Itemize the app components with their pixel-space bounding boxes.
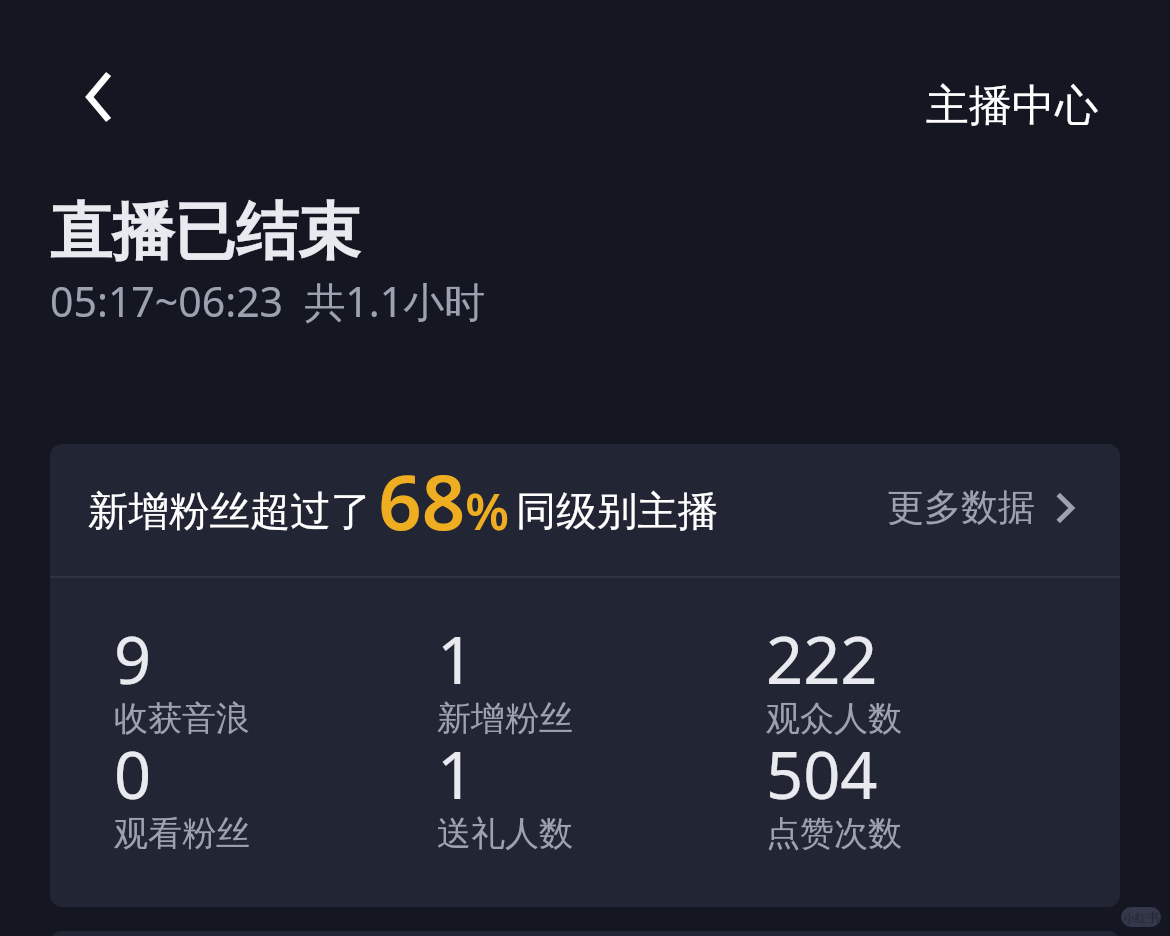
staticText: 小红书 xyxy=(1123,910,1159,925)
staticText: 222 xyxy=(766,615,878,704)
staticText: 0 xyxy=(114,730,152,819)
staticText: 直播已结束 xyxy=(50,193,360,271)
button[interactable]: 更多数据 xyxy=(875,466,1089,549)
staticText: 更多数据 xyxy=(887,484,1035,531)
staticText: 主播中心 xyxy=(926,79,1098,133)
staticText: 新增粉丝 xyxy=(437,697,573,740)
staticText: 新增粉丝超过了 68% 同级别主播 xyxy=(88,449,719,553)
button[interactable]: 主播中心 xyxy=(906,69,1118,143)
staticText: 观看粉丝 xyxy=(114,812,250,855)
staticText: 点赞次数 xyxy=(766,812,902,855)
button[interactable]: Back xyxy=(59,57,139,137)
staticText: 1 xyxy=(437,730,475,819)
staticText: 504 xyxy=(766,730,878,819)
staticText: 9 xyxy=(114,615,152,704)
staticText: 送礼人数 xyxy=(437,812,573,855)
staticText: 05:17~06:23 共1.1小时 xyxy=(50,273,486,329)
staticText: 收获音浪 xyxy=(114,697,250,740)
staticText: 1 xyxy=(437,615,475,704)
staticText: 观众人数 xyxy=(766,697,902,740)
